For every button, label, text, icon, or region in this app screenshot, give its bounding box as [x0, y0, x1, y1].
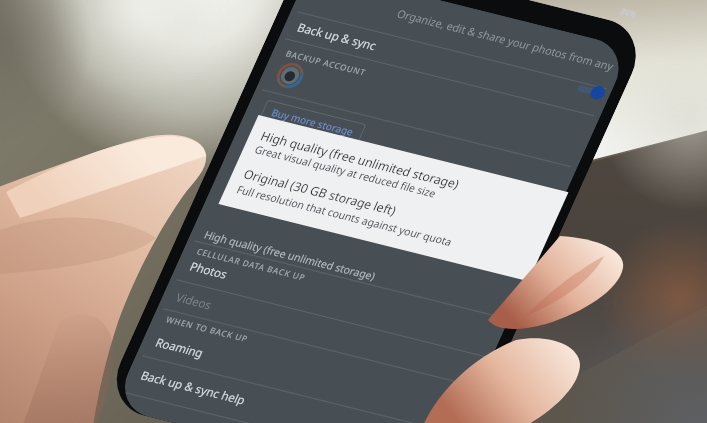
staticText: Buy more storage — [265, 74, 360, 170]
staticText: BACKUP ACCOUNT — [280, 17, 372, 110]
staticText: CELLULAR DATA BACK UP — [191, 204, 311, 326]
staticText: WHEN TO BACK UP — [160, 282, 253, 377]
staticText: High quality (free unlimited storage) — [197, 161, 383, 349]
staticText: High quality (free unlimited storage) — [253, 51, 467, 269]
staticText: Full resolution that counts against your… — [230, 99, 459, 332]
staticText: Original (30 GB storage left) — [235, 107, 405, 279]
staticText: 86% — [616, 0, 642, 25]
staticText: Back up & sync — [290, 0, 384, 84]
staticText: Great visual quality at reduced file siz… — [248, 72, 443, 270]
staticText: Organize, edit & share your photos from … — [390, 0, 621, 158]
staticText: Photos — [183, 244, 236, 297]
button[interactable]: Back up and sync toggle — [571, 72, 610, 110]
staticText: Back up & sync help — [133, 327, 254, 423]
staticText: Roaming — [148, 316, 212, 379]
staticText: Videos — [169, 275, 220, 326]
button[interactable]: Buy more storage — [251, 61, 373, 184]
